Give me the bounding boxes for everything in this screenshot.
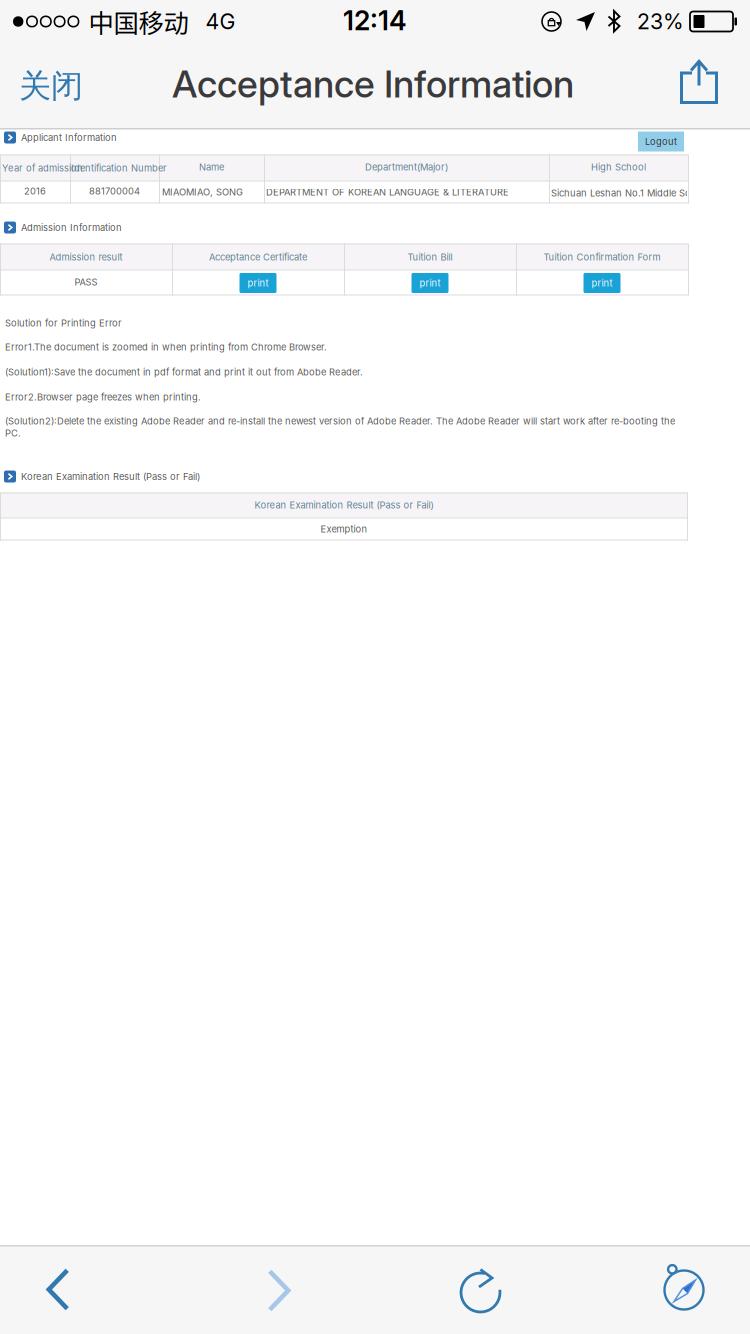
staticText: 881700004 xyxy=(89,185,140,197)
staticText: (Solution1):Save the document in pdf for… xyxy=(5,366,363,378)
staticText: Tuition Confirmation Form xyxy=(543,251,660,263)
staticText: Identification Number xyxy=(71,162,167,174)
button[interactable]: print xyxy=(239,273,276,293)
staticText: 关闭 xyxy=(19,66,83,106)
button[interactable]: Open in Safari xyxy=(619,1244,749,1332)
staticText: Tuition Bill xyxy=(407,251,452,263)
staticText: print xyxy=(247,277,268,289)
staticText: print xyxy=(419,277,440,289)
staticText: 2016 xyxy=(24,185,46,197)
staticText: Korean Examination Result (Pass or Fail) xyxy=(254,499,433,511)
staticText: Exemption xyxy=(320,523,367,535)
staticText: (Solution2):Delete the existing Adobe Re… xyxy=(5,415,675,427)
button[interactable]: Reload xyxy=(416,1247,546,1334)
staticText: Logout xyxy=(645,136,677,147)
staticText: 4G xyxy=(206,9,236,34)
staticText: MIAOMIAO, SONG xyxy=(162,186,243,198)
button[interactable]: Back xyxy=(0,1245,123,1333)
staticText: Name xyxy=(199,161,224,173)
button[interactable]: Logout xyxy=(638,131,684,151)
staticText: Solution for Printing Error xyxy=(5,317,122,329)
button[interactable]: Forward xyxy=(214,1246,344,1334)
button[interactable]: print xyxy=(583,273,620,293)
staticText: Admission Information xyxy=(21,222,122,233)
staticText: Year of admission xyxy=(2,162,83,174)
staticText: print xyxy=(591,277,612,289)
staticText: Acceptance Information xyxy=(172,61,574,107)
staticText: Admission result xyxy=(49,251,122,263)
button[interactable]: Share xyxy=(649,39,749,124)
staticText: High School xyxy=(591,161,646,173)
staticText: Acceptance Certificate xyxy=(209,251,307,263)
staticText: Error2.Browser page freezes when printin… xyxy=(5,391,201,403)
staticText: Korean Examination Result (Pass or Fail) xyxy=(21,471,200,482)
staticText: 23% xyxy=(637,9,684,34)
staticText: PASS xyxy=(74,276,97,288)
staticText: PC. xyxy=(5,427,21,439)
staticText: 中国移动 xyxy=(89,3,189,40)
button[interactable]: print xyxy=(411,273,448,293)
staticText: Error1.The document is zoomed in when pr… xyxy=(5,341,327,353)
button[interactable]: 关闭 xyxy=(1,43,101,128)
staticText: Department(Major) xyxy=(365,161,448,173)
staticText: Sichuan Leshan No.1 Middle School xyxy=(551,187,710,199)
staticText: Applicant Information xyxy=(21,132,117,143)
staticText: DEPARTMENT OF KOREAN LANGUAGE & LITERATU… xyxy=(266,186,509,198)
staticText: 12:14 xyxy=(343,4,407,37)
